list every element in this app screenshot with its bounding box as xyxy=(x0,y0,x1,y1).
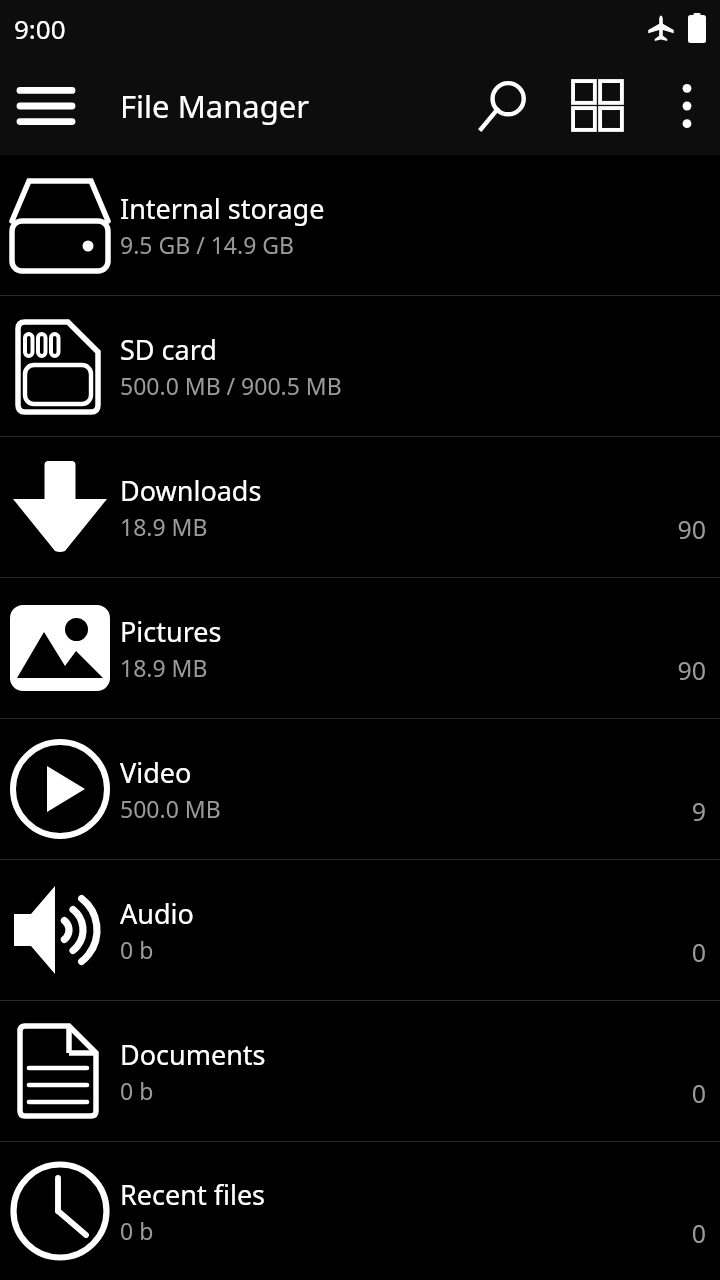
button[interactable]: Downloads xyxy=(0,437,720,577)
staticText: 9:00 xyxy=(14,11,66,46)
button[interactable]: Recent files xyxy=(0,1142,720,1280)
staticText: 0 xyxy=(691,1216,706,1250)
staticText: 0 xyxy=(691,1076,706,1110)
button[interactable]: Audio xyxy=(0,860,720,1000)
staticText: Documents xyxy=(120,1036,266,1073)
button[interactable]: Video xyxy=(0,719,720,859)
staticText: 0 b xyxy=(120,1215,154,1246)
staticText: Video xyxy=(120,754,192,791)
button[interactable]: Documents xyxy=(0,1001,720,1141)
staticText: Audio xyxy=(120,895,194,932)
button[interactable]: SD card xyxy=(0,296,720,436)
staticText: 0 xyxy=(691,935,706,969)
staticText: 90 xyxy=(677,512,706,546)
button[interactable]: Search xyxy=(458,56,550,155)
staticText: File Manager xyxy=(120,85,310,127)
staticText: 500.0 MB / 900.5 MB xyxy=(120,370,342,401)
staticText: 18.9 MB xyxy=(120,652,208,683)
staticText: 500.0 MB xyxy=(120,793,221,824)
staticText: 0 b xyxy=(120,934,154,965)
staticText: SD card xyxy=(120,331,217,368)
staticText: 18.9 MB xyxy=(120,511,208,542)
staticText: 90 xyxy=(677,653,706,687)
staticText: 9 xyxy=(691,794,706,828)
button[interactable]: Pictures xyxy=(0,578,720,718)
staticText: Recent files xyxy=(120,1176,266,1213)
staticText: 0 b xyxy=(120,1075,154,1106)
staticText: 9.5 GB / 14.9 GB xyxy=(120,229,294,260)
button[interactable]: More options xyxy=(646,56,720,155)
button[interactable]: Change view xyxy=(550,56,646,155)
staticText: Internal storage xyxy=(120,190,325,227)
staticText: Pictures xyxy=(120,613,222,650)
button[interactable]: Internal storage xyxy=(0,155,720,295)
staticText: Downloads xyxy=(120,472,262,509)
button[interactable]: Open navigation drawer xyxy=(0,56,92,155)
